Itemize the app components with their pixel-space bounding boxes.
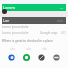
button[interactable]: Option one [8,54,15,61]
staticText: GO [61,31,66,35]
staticText: abc [10,47,15,51]
staticText: Google map [40,31,58,35]
button[interactable]: Profile [2,9,7,14]
button[interactable]: Option four [53,54,60,61]
button[interactable]: Option three [38,54,45,61]
staticText: Where is great to checked in a place [2,39,53,43]
staticText: abc [26,47,31,51]
staticText: sum [57,19,64,23]
staticText: Lorem [3,5,16,10]
staticText: Lor [3,18,10,23]
button[interactable]: Lor [2,17,66,24]
staticText: Lorem ipsum dolor [2,31,29,35]
staticText: ··· [60,6,64,11]
staticText: abc [42,47,47,51]
button[interactable]: Option two [23,54,30,61]
button[interactable]: More options [59,5,65,11]
staticText: Lorem ipsum dolor [2,25,29,29]
